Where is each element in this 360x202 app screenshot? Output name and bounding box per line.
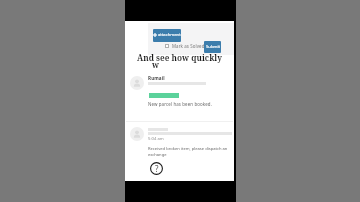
staticText: Submit xyxy=(206,44,220,50)
button[interactable]: Mark as Solved xyxy=(165,42,205,50)
staticText: Mark as Solved xyxy=(172,43,205,49)
button[interactable]: Help xyxy=(150,162,163,175)
staticText: 5:04 am xyxy=(148,136,164,142)
staticText: ? xyxy=(155,163,159,174)
staticText: w xyxy=(152,59,160,70)
staticText: And see how quickly xyxy=(125,52,234,63)
staticText: attachment xyxy=(158,32,181,38)
staticText: New parcel has been booked. xyxy=(148,101,212,107)
button[interactable]: attachment xyxy=(153,29,181,42)
staticText: Rumail xyxy=(148,75,165,81)
button[interactable]: Submit xyxy=(204,41,221,53)
staticText: Received broken item, please dispatch an… xyxy=(148,146,230,157)
